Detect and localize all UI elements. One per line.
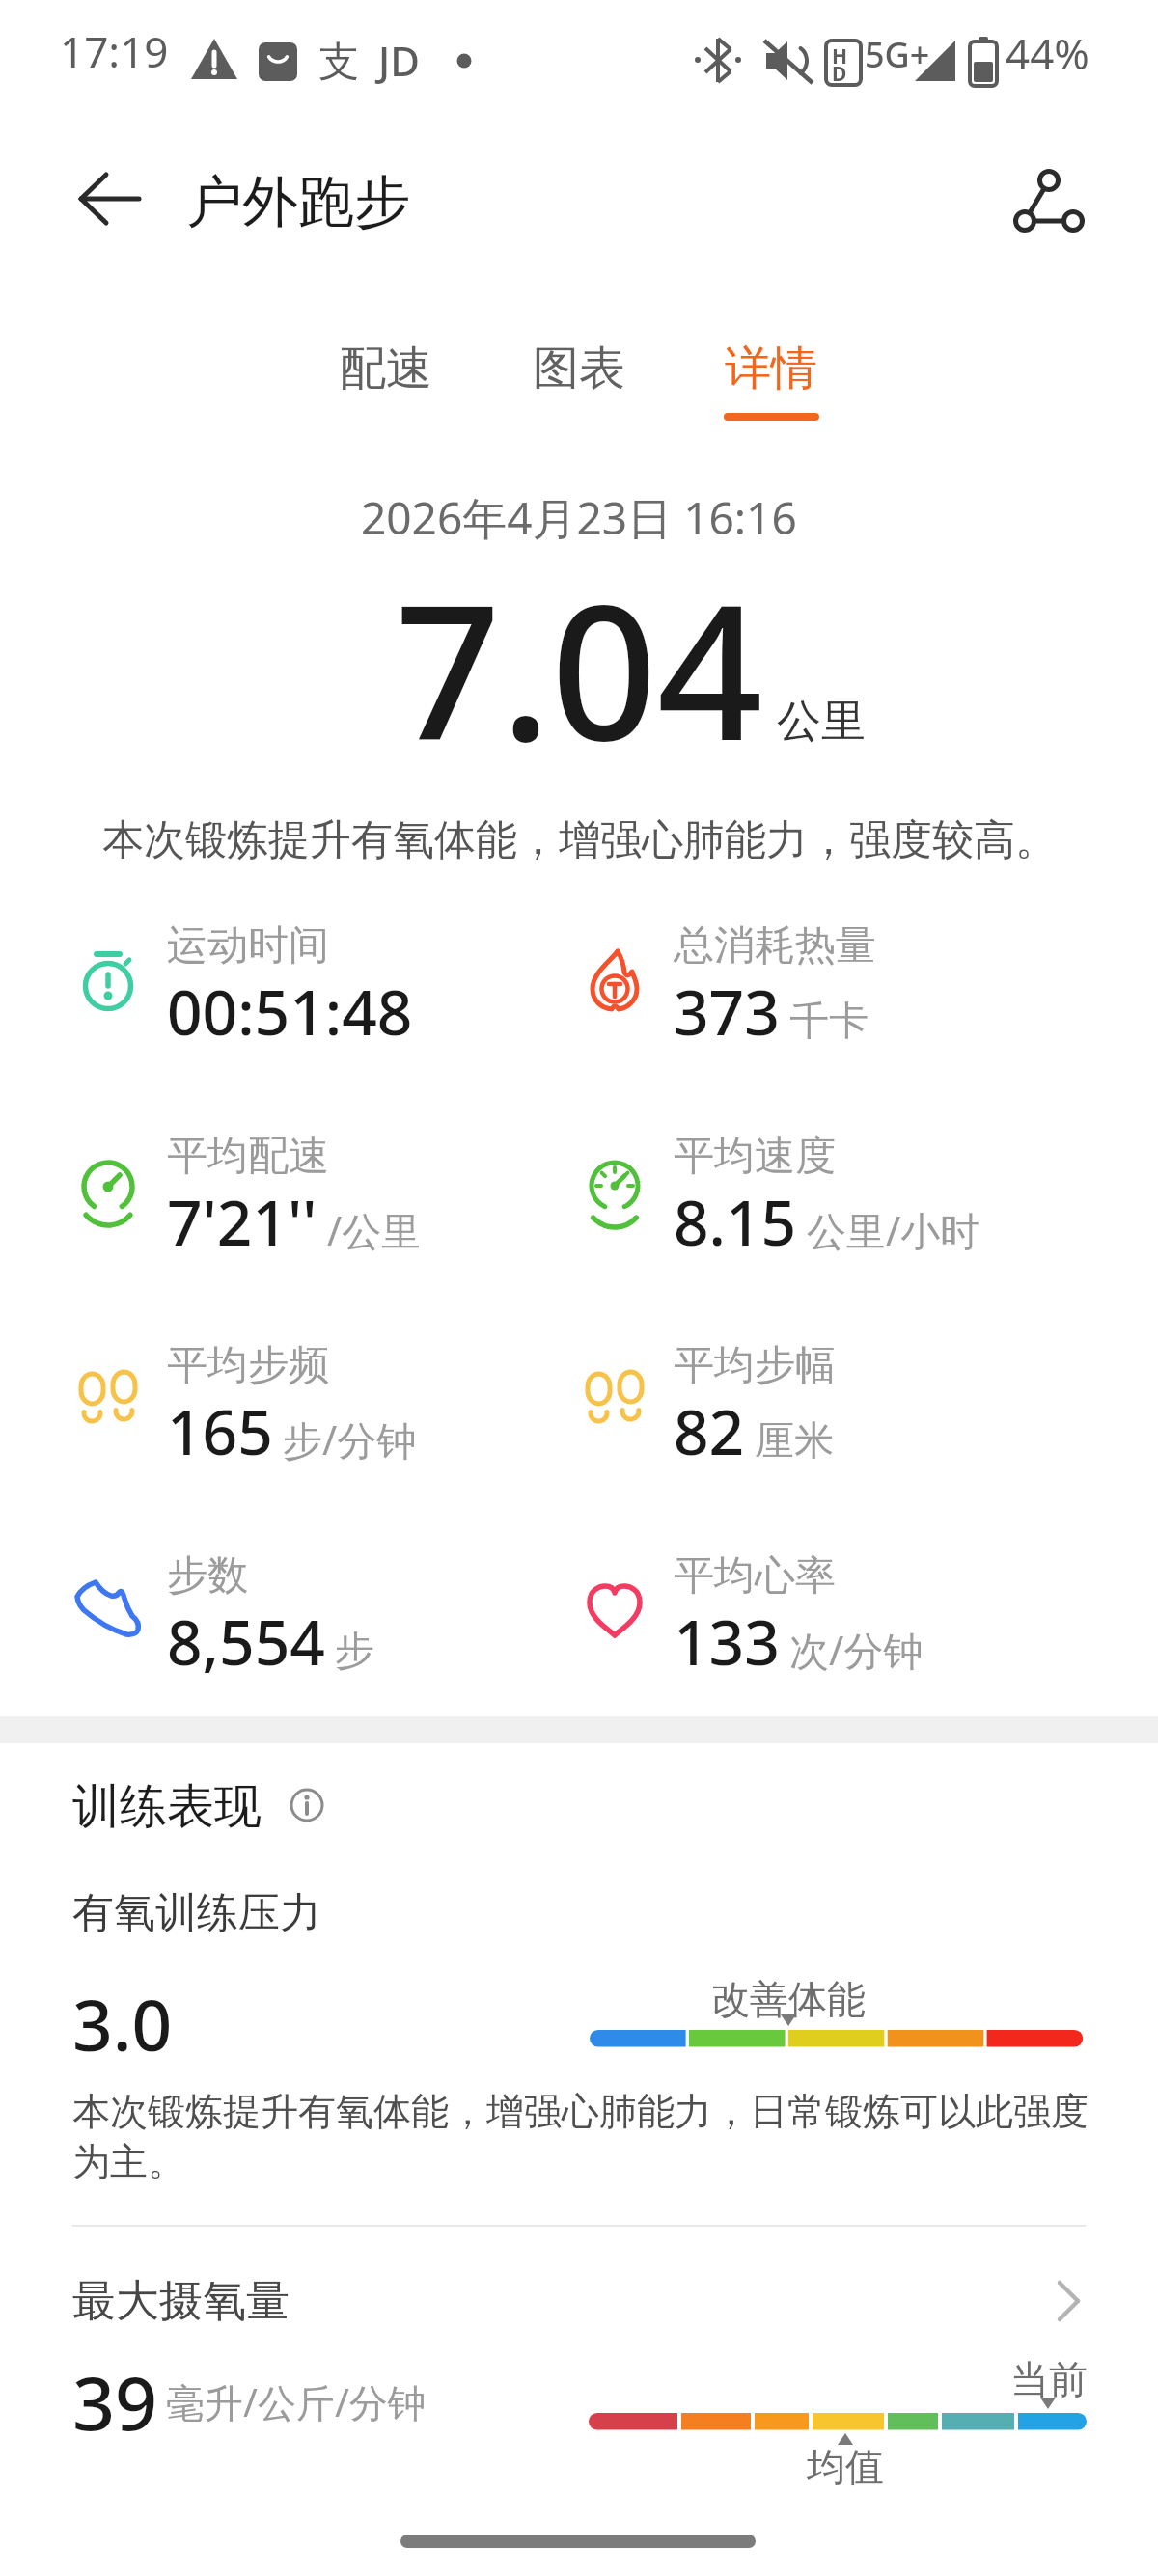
staticText: 当前 [1010,2355,1088,2403]
staticText: 为主。 [72,2138,185,2185]
staticText: 千卡 [789,997,868,1047]
staticText: 最大摄氧量 [72,2274,289,2329]
staticText: 支 [318,37,359,88]
staticText: 7'21'' [167,1180,317,1264]
staticText: JD [378,33,420,88]
staticText: 本次锻炼提升有氧体能，增强心肺能力，强度较高。 [102,814,1057,866]
staticText: 44% [1006,24,1089,82]
staticText: 平均步频 [167,1340,329,1391]
staticText: 平均步幅 [674,1340,836,1391]
button[interactable]: 详情 [723,340,819,423]
staticText: 公里 [777,694,866,750]
staticText: 总消耗热量 [674,920,876,972]
staticText: 平均配速 [167,1131,329,1182]
staticText: 公里/小时 [807,1203,980,1257]
staticText: 配速 [340,340,432,397]
staticText: 步数 [167,1550,248,1602]
button[interactable] [0,2248,1158,2373]
staticText: 2026年4月23日 16:16 [361,487,797,548]
staticText: 有氧训练压力 [72,1887,321,1939]
staticText: 133 [674,1600,780,1684]
staticText: 00:51:48 [167,970,413,1054]
staticText: 165 [167,1389,273,1473]
button[interactable] [1004,162,1092,239]
staticText: /公里 [327,1203,422,1257]
staticText: 次/分钟 [789,1623,924,1677]
staticText: 8.15 [674,1180,797,1264]
staticText: 均值 [807,2443,884,2491]
staticText: 平均心率 [674,1550,836,1602]
staticText: 厘米 [755,1416,834,1466]
staticText: 3.0 [72,1976,173,2071]
staticText: 图表 [533,340,625,397]
staticText: 训练表现 [72,1777,262,1837]
staticText: 详情 [725,340,817,397]
staticText: 改善体能 [711,1975,866,2023]
button[interactable] [68,164,145,237]
staticText: 17:19 [60,22,169,80]
staticText: 7.04 [395,542,763,795]
staticText: H [832,42,848,70]
staticText: 本次锻炼提升有氧体能，增强心肺能力，日常锻炼可以此强度 [72,2088,1089,2135]
staticText: D [832,60,847,88]
staticText: 82 [674,1389,745,1473]
staticText: 39 [72,2351,158,2453]
button[interactable]: 配速 [340,340,432,423]
staticText: 步 [335,1627,374,1677]
staticText: 户外跑步 [186,167,410,237]
staticText: 步/分钟 [283,1412,417,1466]
staticText: 5G+ [865,31,930,78]
staticText: 373 [674,970,780,1054]
staticText: 平均速度 [674,1131,836,1182]
button[interactable]: 图表 [533,340,625,423]
staticText: 8,554 [167,1600,325,1684]
button[interactable] [286,1784,328,1826]
staticText: 毫升/公斤/分钟 [166,2375,427,2428]
staticText: 运动时间 [167,920,329,972]
